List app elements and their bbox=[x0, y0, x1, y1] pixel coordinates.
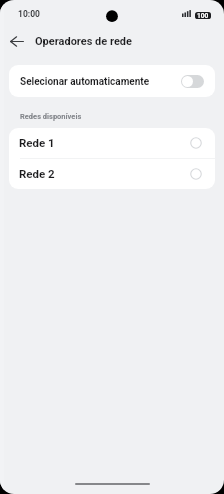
button[interactable]: Selecionar automaticamente bbox=[181, 75, 204, 88]
staticText: Rede 2 bbox=[19, 167, 55, 180]
button[interactable]: Back bbox=[3, 27, 31, 55]
staticText: 10:00 bbox=[18, 9, 40, 19]
staticText: Rede 1 bbox=[19, 136, 55, 149]
staticText: Redes disponíveis bbox=[20, 112, 82, 121]
button[interactable]: Selecionar automaticamente bbox=[9, 65, 215, 97]
button[interactable]: Rede 1 bbox=[9, 128, 215, 158]
staticText: Operadores de rede bbox=[35, 35, 132, 48]
staticText: Selecionar automaticamente bbox=[20, 76, 150, 88]
button[interactable]: Rede 2 bbox=[9, 159, 215, 189]
staticText: 100 bbox=[197, 12, 209, 19]
